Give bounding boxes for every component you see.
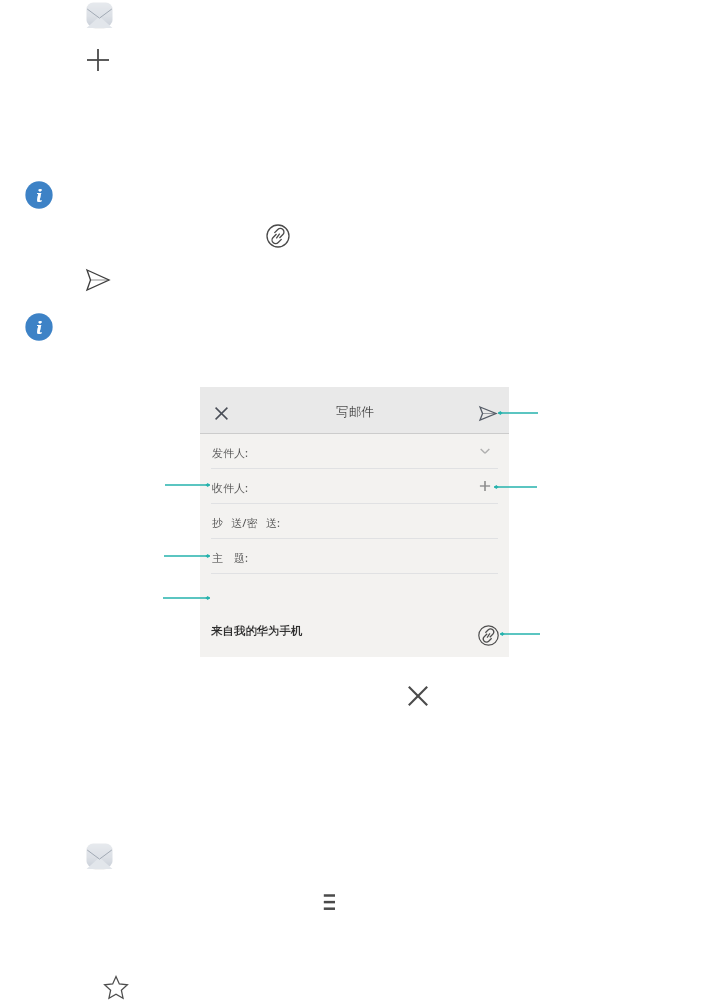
staticText: 抄 送/密 送: xyxy=(212,515,280,530)
button[interactable]: Send xyxy=(480,407,496,420)
button[interactable]: Attach link xyxy=(266,224,290,248)
staticText: 发件人: xyxy=(212,445,248,460)
staticText: 写邮件 xyxy=(336,404,374,420)
staticText: 收件人: xyxy=(212,480,248,495)
button[interactable]: 主 题: xyxy=(200,539,509,573)
staticText: 来自我的华为手机 xyxy=(211,624,303,638)
button[interactable]: Information xyxy=(25,313,53,341)
button[interactable]: Add recipient xyxy=(477,478,493,494)
button[interactable]: Email xyxy=(86,2,113,28)
button[interactable]: Expand xyxy=(477,443,493,459)
button[interactable]: Send xyxy=(87,270,109,290)
staticText: i xyxy=(36,316,43,339)
button[interactable]: Menu xyxy=(319,891,340,913)
button[interactable]: Information xyxy=(25,181,53,209)
button[interactable]: Favourite xyxy=(104,976,128,1000)
button[interactable]: Email xyxy=(86,843,113,869)
button[interactable]: Add xyxy=(85,47,111,73)
staticText: i xyxy=(36,184,43,207)
button[interactable]: Close xyxy=(405,683,431,709)
button[interactable]: 发件人: xyxy=(200,434,509,468)
staticText: 主 题: xyxy=(212,550,248,565)
button[interactable]: Attach xyxy=(478,625,499,646)
button[interactable]: Close xyxy=(209,401,234,426)
button[interactable]: 抄 送/密 送: xyxy=(200,504,509,538)
button[interactable]: 收件人: xyxy=(200,469,509,503)
